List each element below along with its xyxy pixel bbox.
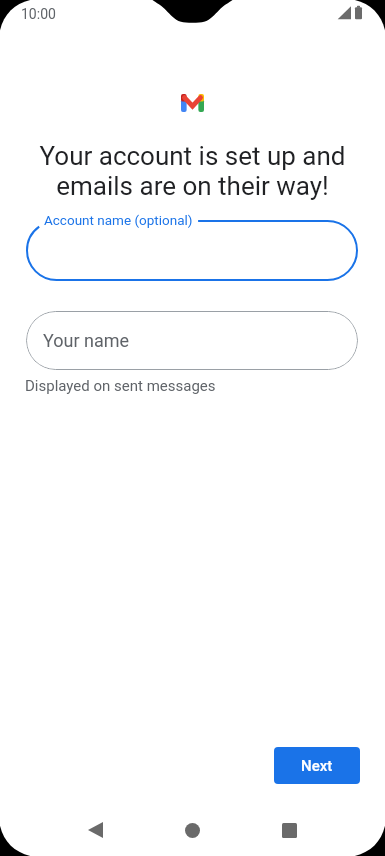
button[interactable]: Back: [71, 806, 119, 854]
staticText: 10:00: [21, 6, 56, 22]
staticText: Displayed on sent messages: [25, 377, 216, 395]
button[interactable]: Account name (optional): [26, 220, 358, 281]
button[interactable]: Home: [168, 806, 216, 854]
button[interactable]: Next: [274, 747, 360, 784]
button[interactable]: Your name: [26, 311, 358, 370]
other: Signal and battery status: [337, 5, 364, 21]
button[interactable]: Recent apps: [265, 806, 313, 854]
staticText: Your account is set up and emails are on…: [30, 141, 355, 201]
staticText: Account name (optional): [44, 212, 193, 228]
staticText: Next: [301, 757, 333, 775]
staticText: Your name: [43, 330, 130, 351]
